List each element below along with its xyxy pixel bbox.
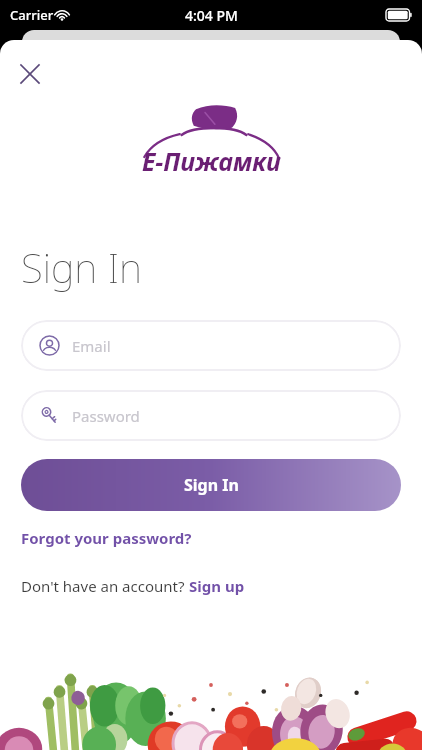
button[interactable]: Sign In — [21, 459, 401, 511]
staticText: Sign In — [21, 240, 142, 294]
staticText: Don't have an account? — [21, 576, 189, 596]
button[interactable]: Close — [8, 52, 52, 96]
staticText: Carrier — [10, 6, 54, 24]
staticText: Password — [72, 406, 140, 426]
staticText: Email — [72, 336, 111, 356]
staticText: Sign In — [184, 474, 239, 496]
button[interactable]: Sign up — [189, 576, 245, 596]
button[interactable]: Forgot your password? — [21, 528, 192, 548]
staticText: Е-Пижамки — [142, 144, 281, 178]
staticText: 4:04 PM — [185, 6, 238, 25]
button[interactable]: Email — [21, 320, 401, 371]
staticText: Forgot your password? — [21, 528, 192, 548]
button[interactable]: Password — [21, 390, 401, 441]
staticText: Sign up — [189, 576, 245, 596]
